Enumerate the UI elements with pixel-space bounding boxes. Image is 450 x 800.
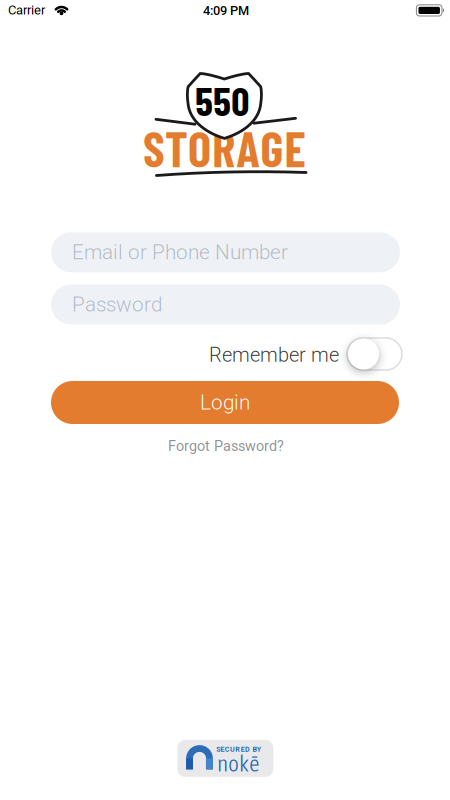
staticText: Login bbox=[200, 390, 250, 415]
button[interactable]: Forgot Password? bbox=[168, 438, 284, 454]
staticText: Forgot Password? bbox=[168, 438, 284, 454]
button[interactable]: Remember me bbox=[347, 338, 402, 370]
staticText: nokē bbox=[217, 750, 260, 776]
staticText: SECURED BY bbox=[216, 745, 261, 753]
button[interactable]: Email or Phone Number bbox=[51, 232, 400, 272]
staticText: Carrier bbox=[8, 2, 45, 18]
staticText: Password bbox=[72, 292, 162, 317]
button[interactable]: Login bbox=[51, 381, 399, 424]
staticText: 550 bbox=[195, 76, 249, 124]
button[interactable]: Password bbox=[51, 284, 400, 324]
staticText: 4:09 PM bbox=[203, 3, 249, 18]
staticText: STORAGE bbox=[143, 118, 305, 177]
staticText: Remember me bbox=[209, 343, 339, 366]
staticText: Email or Phone Number bbox=[72, 240, 288, 264]
